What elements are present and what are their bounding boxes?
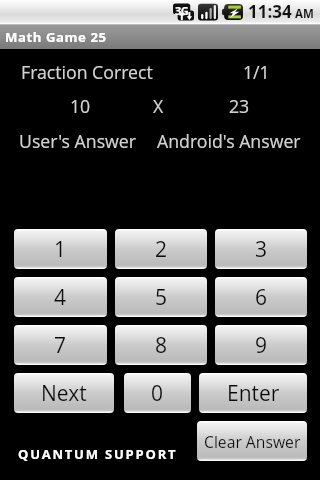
staticText: 9 bbox=[255, 331, 268, 360]
button[interactable]: 3 bbox=[215, 229, 307, 269]
staticText: 23 bbox=[229, 94, 250, 118]
button[interactable]: 0 bbox=[124, 373, 191, 413]
staticText: 8 bbox=[155, 331, 168, 360]
button[interactable]: 8 bbox=[115, 325, 207, 365]
button[interactable]: 7 bbox=[14, 325, 107, 365]
staticText: AM bbox=[295, 6, 314, 22]
button[interactable]: Enter bbox=[199, 373, 307, 413]
button[interactable]: Next bbox=[14, 373, 114, 413]
staticText: X bbox=[153, 94, 164, 118]
staticText: 1/1 bbox=[243, 60, 270, 84]
staticText: 4 bbox=[54, 283, 67, 312]
button[interactable]: 1 bbox=[14, 229, 107, 269]
staticText: Fraction Correct bbox=[21, 60, 153, 84]
staticText: 5 bbox=[155, 283, 168, 312]
button[interactable]: 9 bbox=[215, 325, 307, 365]
button[interactable]: 4 bbox=[14, 277, 107, 317]
staticText: QUANTUM SUPPORT bbox=[18, 445, 178, 463]
staticText: 2 bbox=[155, 235, 168, 264]
staticText: Clear Answer bbox=[204, 431, 301, 452]
button[interactable]: 6 bbox=[215, 277, 307, 317]
button[interactable]: Clear Answer bbox=[197, 421, 307, 461]
staticText: Android's Answer bbox=[157, 129, 301, 153]
staticText: 10 bbox=[70, 94, 91, 118]
staticText: 0 bbox=[151, 379, 164, 408]
button[interactable]: 2 bbox=[115, 229, 207, 269]
staticText: User's Answer bbox=[19, 129, 136, 153]
button[interactable]: 5 bbox=[115, 277, 207, 317]
staticText: Next bbox=[41, 379, 87, 408]
staticText: 1 bbox=[54, 235, 67, 264]
staticText: 7 bbox=[54, 331, 67, 360]
staticText: 3 bbox=[255, 235, 268, 264]
staticText: 6 bbox=[255, 283, 268, 312]
staticText: Math Game 25 bbox=[5, 28, 107, 46]
staticText: 3G bbox=[175, 3, 189, 18]
staticText: 11:34 bbox=[248, 0, 292, 23]
staticText: Enter bbox=[227, 379, 280, 408]
